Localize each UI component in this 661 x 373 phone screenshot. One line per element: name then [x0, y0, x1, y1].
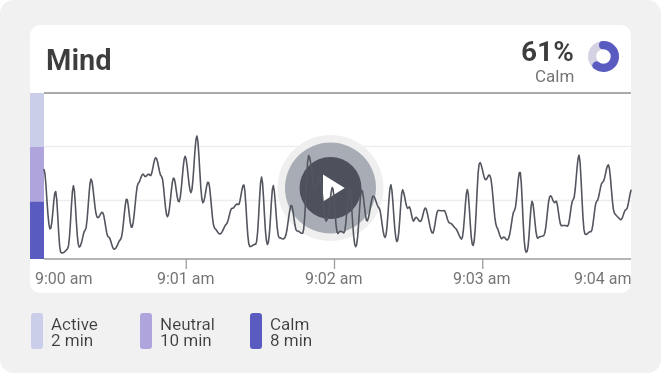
staticText: 8 min	[270, 330, 313, 350]
staticText: 61%	[521, 35, 574, 68]
staticText: Calm	[535, 66, 575, 86]
button[interactable]: Neutral	[140, 313, 215, 353]
staticText: 2 min	[51, 330, 94, 350]
button[interactable]: Active	[31, 313, 98, 353]
staticText: 9:02 am	[305, 269, 363, 288]
staticText: 9:03 am	[453, 269, 511, 288]
staticText: Mind	[46, 43, 112, 77]
staticText: 10 min	[160, 330, 212, 350]
staticText: 9:04 am	[574, 269, 632, 288]
staticText: 9:00 am	[35, 269, 93, 288]
staticText: 9:01 am	[157, 269, 215, 288]
button[interactable]: Play	[285, 142, 377, 234]
staticText: Active	[51, 314, 98, 334]
button[interactable]: Calm	[250, 313, 313, 353]
staticText: Neutral	[160, 314, 215, 334]
staticText: Calm	[270, 314, 310, 334]
